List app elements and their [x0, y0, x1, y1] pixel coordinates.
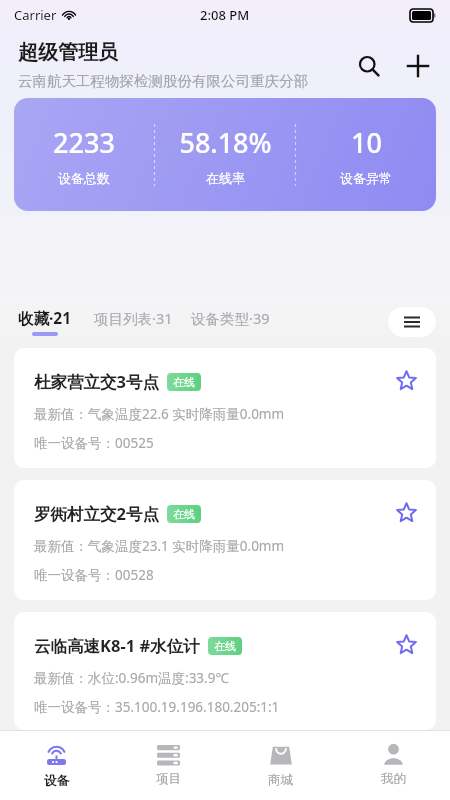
- staticText: Carrier: [14, 6, 57, 24]
- button[interactable]: 2233: [14, 98, 436, 211]
- staticText: 最新值：气象温度22.6 实时降雨量0.0mm: [34, 405, 285, 423]
- staticText: 项目列表·31: [94, 308, 173, 328]
- button[interactable]: 杜家营立交3号点: [14, 348, 436, 468]
- staticText: 10: [351, 124, 382, 161]
- staticText: 杜家营立交3号点: [34, 370, 159, 393]
- button[interactable]: Favorite: [388, 626, 424, 662]
- staticText: 我的: [381, 771, 406, 787]
- button[interactable]: 我的: [337, 731, 450, 800]
- button[interactable]: 云临高速K8-1 #水位计: [14, 612, 436, 730]
- staticText: 唯一设备号：00525: [34, 434, 154, 452]
- button[interactable]: 收藏·21: [18, 303, 72, 340]
- staticText: 在线: [173, 507, 195, 521]
- staticText: 最新值：水位:0.96m温度:33.9℃: [34, 669, 229, 687]
- staticText: 收藏·21: [18, 307, 72, 328]
- button[interactable]: 项目列表·31: [94, 304, 173, 340]
- staticText: 设备异常: [340, 170, 392, 186]
- button[interactable]: 罗衖村立交2号点: [14, 480, 436, 600]
- button[interactable]: Add: [398, 46, 438, 86]
- button[interactable]: Favorite: [388, 362, 424, 398]
- staticText: 项目: [156, 771, 181, 787]
- button[interactable]: Menu: [388, 307, 436, 337]
- button[interactable]: 设备: [0, 731, 112, 800]
- staticText: 商城: [268, 772, 293, 788]
- button[interactable]: 商城: [224, 731, 337, 800]
- staticText: 在线: [173, 375, 195, 389]
- button[interactable]: Favorite: [388, 494, 424, 530]
- staticText: 58.18%: [179, 124, 272, 161]
- staticText: 设备: [44, 773, 69, 789]
- button[interactable]: 设备类型·39: [191, 304, 270, 340]
- button[interactable]: 项目: [112, 731, 224, 800]
- staticText: 设备类型·39: [191, 308, 270, 328]
- staticText: 云临高速K8-1 #水位计: [34, 634, 200, 657]
- staticText: 在线率: [206, 170, 245, 186]
- staticText: 唯一设备号：35.100.19.196.180.205:1:1: [34, 698, 280, 716]
- staticText: 设备总数: [58, 170, 110, 186]
- staticText: 2:08 PM: [200, 6, 250, 24]
- staticText: 罗衖村立交2号点: [34, 502, 159, 525]
- staticText: 唯一设备号：00528: [34, 566, 154, 584]
- staticText: 超级管理员: [18, 40, 118, 65]
- staticText: 在线: [214, 639, 236, 653]
- staticText: 最新值：气象温度23.1 实时降雨量0.0mm: [34, 537, 285, 555]
- staticText: 2233: [53, 124, 115, 161]
- button[interactable]: Search: [349, 46, 389, 86]
- staticText: 云南航天工程物探检测股份有限公司重庆分部: [18, 72, 308, 90]
